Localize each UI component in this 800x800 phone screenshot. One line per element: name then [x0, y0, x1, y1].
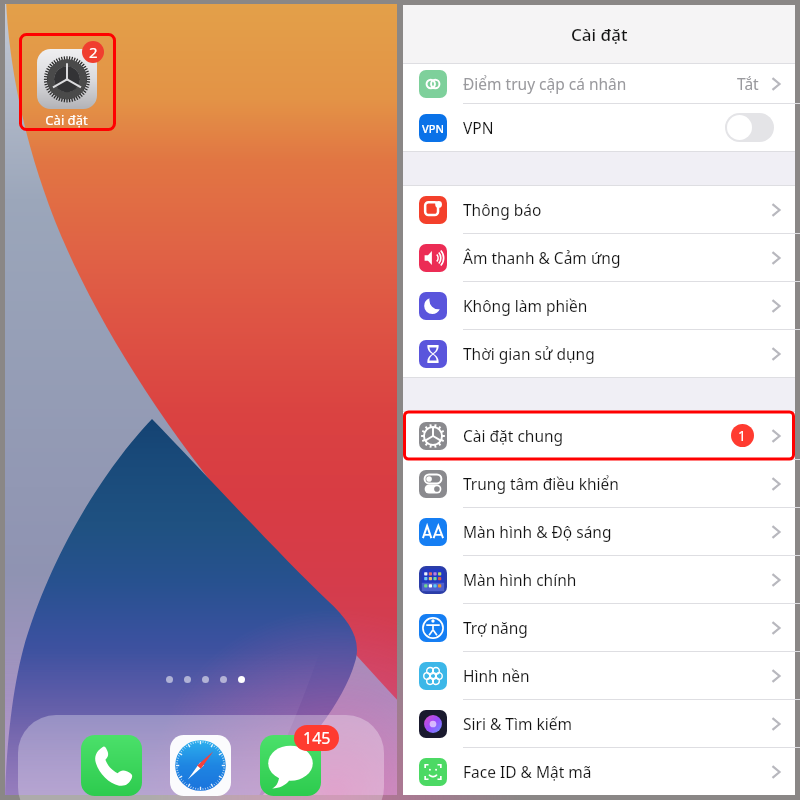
staticText: VPN: [463, 117, 494, 138]
staticText: Thông báo: [463, 199, 542, 220]
button[interactable]: Điểm truy cập cá nhân: [403, 64, 795, 103]
staticText: Tắt: [737, 73, 759, 94]
button[interactable]: Messages: [260, 735, 321, 796]
staticText: 2: [89, 42, 98, 62]
staticText: Trung tâm điều khiển: [463, 473, 619, 494]
button[interactable]: Thời gian sử dụng: [403, 330, 795, 377]
button[interactable]: Hình nền: [403, 652, 795, 699]
staticText: Điểm truy cập cá nhân: [463, 73, 627, 94]
staticText: Âm thanh & Cảm ứng: [463, 247, 621, 268]
button[interactable]: Thông báo: [403, 186, 795, 233]
button[interactable]: Màn hình & Độ sáng: [403, 508, 795, 555]
button[interactable]: Safari: [170, 735, 231, 796]
staticText: Cài đặt chung: [463, 425, 564, 446]
button[interactable]: Màn hình chính: [403, 556, 795, 603]
button[interactable]: Trợ năng: [403, 604, 795, 651]
staticText: Cài đặt: [45, 111, 88, 129]
staticText: Face ID & Mật mã: [463, 761, 592, 782]
staticText: Siri & Tìm kiếm: [463, 713, 572, 734]
staticText: 1: [738, 426, 747, 445]
staticText: Trợ năng: [463, 617, 528, 638]
staticText: Thời gian sử dụng: [463, 343, 595, 364]
button[interactable]: Âm thanh & Cảm ứng: [403, 234, 795, 281]
staticText: 145: [303, 727, 331, 749]
button[interactable]: Cài đặt chung: [403, 412, 795, 459]
button[interactable]: VPN toggle: [725, 113, 774, 142]
staticText: Màn hình & Độ sáng: [463, 521, 612, 542]
staticText: Không làm phiền: [463, 295, 588, 316]
staticText: Màn hình chính: [463, 569, 577, 590]
button[interactable]: Trung tâm điều khiển: [403, 460, 795, 507]
button[interactable]: Face ID & Mật mã: [403, 748, 795, 795]
staticText: Hình nền: [463, 665, 530, 686]
button[interactable]: Cài đặt: [37, 49, 97, 109]
staticText: Cài đặt: [571, 23, 628, 46]
button[interactable]: Phone: [81, 735, 142, 796]
button[interactable]: VPN: [403, 104, 795, 151]
button[interactable]: Không làm phiền: [403, 282, 795, 329]
staticText: VPN: [422, 121, 445, 136]
button[interactable]: Siri & Tìm kiếm: [403, 700, 795, 747]
